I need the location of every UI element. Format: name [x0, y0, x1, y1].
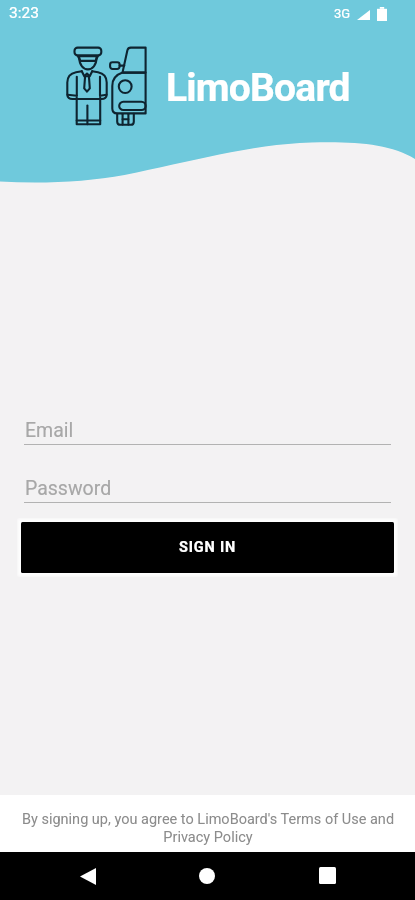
button[interactable]: Home — [163, 852, 251, 900]
staticText: 3:23 — [9, 4, 39, 22]
staticText: 3G — [334, 6, 351, 21]
button[interactable]: SIGN IN — [21, 522, 394, 573]
button[interactable]: Email — [24, 410, 391, 445]
button[interactable]: By signing up, you agree to LimoBoard's … — [16, 811, 400, 846]
staticText: Password — [25, 477, 112, 500]
staticText: Email — [25, 419, 74, 442]
staticText: LimoBoard — [166, 65, 350, 111]
button[interactable]: Password — [24, 468, 391, 503]
button[interactable]: Back — [44, 852, 132, 900]
button[interactable]: Recent apps — [283, 852, 371, 900]
staticText: SIGN IN — [179, 539, 236, 556]
